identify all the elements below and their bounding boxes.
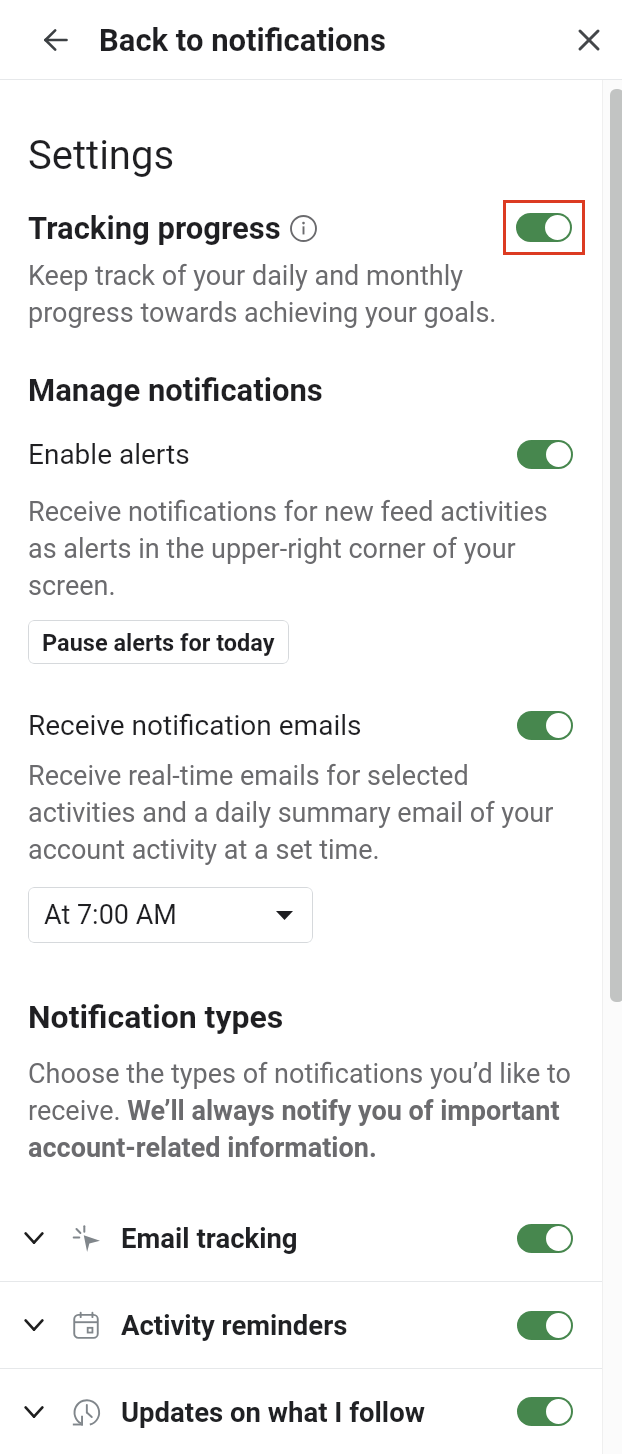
staticText: Choose the types of notifications you’d … bbox=[28, 1054, 588, 1165]
staticText: Activity reminders bbox=[121, 1309, 348, 1341]
staticText: Back to notifications bbox=[99, 22, 386, 58]
staticText: Email tracking bbox=[121, 1222, 298, 1254]
staticText: Settings bbox=[28, 132, 175, 179]
button[interactable]: At 7:00 AM bbox=[28, 887, 313, 943]
button[interactable]: Activity reminders bbox=[0, 1282, 622, 1368]
staticText: Keep track of your daily and monthly pro… bbox=[28, 256, 518, 330]
staticText: Updates on what I follow bbox=[121, 1396, 425, 1428]
staticText: Enable alerts bbox=[28, 438, 190, 471]
staticText: Pause alerts for today bbox=[42, 629, 275, 657]
button[interactable]: Enable alerts bbox=[517, 440, 573, 469]
button[interactable]: Updates on what I follow bbox=[0, 1369, 622, 1454]
button[interactable]: Tracking progress bbox=[516, 213, 572, 242]
staticText: Receive real-time emails for selected ac… bbox=[28, 756, 573, 867]
staticText: Notification types bbox=[28, 998, 284, 1036]
button[interactable]: Receive notification emails bbox=[517, 711, 573, 740]
button[interactable]: Activity reminders bbox=[517, 1311, 573, 1340]
button[interactable]: Updates on what I follow bbox=[517, 1397, 573, 1426]
button[interactable]: More information about tracking progress bbox=[289, 214, 317, 242]
button[interactable]: Back bbox=[34, 18, 78, 62]
button[interactable]: Pause alerts for today bbox=[28, 620, 289, 664]
button[interactable]: Close bbox=[565, 16, 613, 64]
staticText: Tracking progress bbox=[28, 210, 281, 246]
staticText: Receive notification emails bbox=[28, 709, 362, 742]
staticText: At 7:00 AM bbox=[44, 899, 177, 931]
staticText: Receive notifications for new feed activ… bbox=[28, 492, 573, 603]
button[interactable]: Email tracking bbox=[0, 1195, 622, 1281]
staticText: Manage notifications bbox=[28, 372, 323, 408]
button[interactable]: Email tracking bbox=[517, 1224, 573, 1253]
